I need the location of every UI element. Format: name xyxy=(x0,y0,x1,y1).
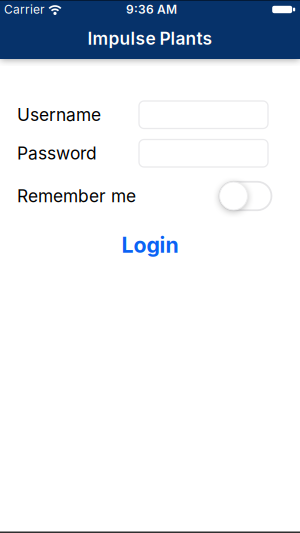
staticText: 9:36 AM xyxy=(126,2,177,17)
staticText: Username xyxy=(17,104,101,125)
staticText: Login xyxy=(121,232,178,258)
staticText: Impulse Plants xyxy=(87,28,212,49)
staticText: Remember me xyxy=(17,186,136,206)
staticText: Password xyxy=(17,143,97,163)
staticText: Carrier xyxy=(4,2,45,17)
